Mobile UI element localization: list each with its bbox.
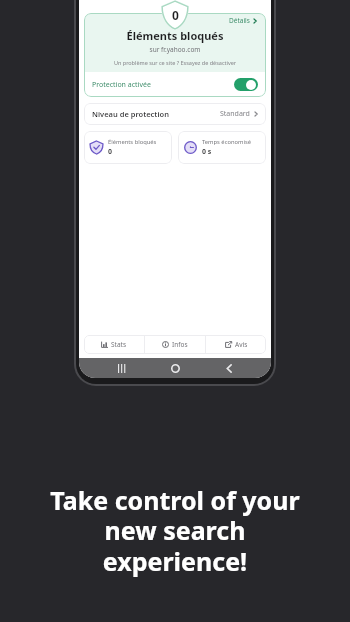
button[interactable]: Protection activée [84, 72, 266, 97]
staticText: 0 [108, 147, 113, 157]
staticText: Éléments bloqués [108, 138, 157, 146]
staticText: 0 s [202, 147, 212, 157]
staticText: Niveau de protection [92, 109, 169, 119]
staticText: Temps économisé [202, 138, 251, 146]
button[interactable]: Niveau de protection [84, 103, 266, 125]
button[interactable]: Back [218, 358, 240, 378]
staticText: 0 [172, 7, 179, 23]
button[interactable]: Infos [145, 335, 205, 354]
staticText: Take control of your new search experien… [50, 483, 300, 579]
staticText: Stats [111, 340, 127, 349]
staticText: Protection activée [92, 80, 151, 90]
staticText: Avis [235, 340, 248, 349]
button[interactable]: Stats [84, 335, 144, 354]
staticText: Un problème sur ce site ? Essayez de dés… [84, 59, 266, 66]
staticText: Standard [220, 109, 250, 119]
staticText: Infos [172, 340, 188, 349]
staticText: sur fr.yahoo.com [84, 45, 266, 54]
button[interactable]: Temps économisé [178, 131, 266, 164]
button[interactable]: Détails [227, 15, 259, 26]
button[interactable]: Recents [111, 358, 133, 378]
button[interactable]: Éléments bloqués [84, 131, 172, 164]
staticText: Détails [229, 16, 250, 25]
button[interactable]: Avis [206, 335, 266, 354]
button[interactable]: Home [164, 358, 186, 378]
staticText: Éléments bloqués [84, 28, 266, 43]
